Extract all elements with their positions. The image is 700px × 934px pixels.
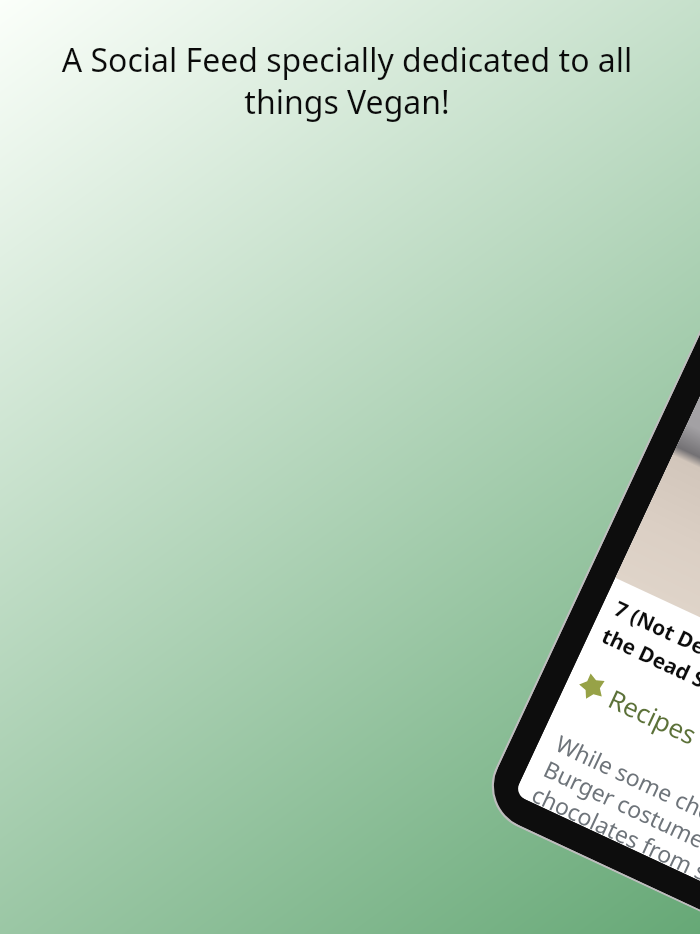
staticText: 7 (Not Dead) Ideas for the Dead Simple F… <box>597 594 700 746</box>
other: Phone preview of the vegan social feed <box>514 2 700 934</box>
staticText: While some chocolate Burger costumes, th… <box>530 727 700 910</box>
button[interactable]: 7 (Not Dead) Ideas for the Dead Simple F… <box>514 2 700 934</box>
staticText: A Social Feed specially dedicated to all… <box>47 38 647 124</box>
button[interactable]: Recipes <box>563 661 683 750</box>
staticText: Recipes <box>603 680 700 752</box>
